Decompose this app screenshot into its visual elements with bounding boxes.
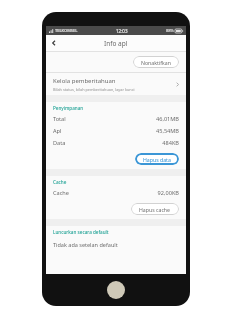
staticText: 12:03 — [116, 28, 128, 34]
staticText: 88% — [166, 28, 174, 33]
button[interactable]: Hapus data — [135, 153, 179, 165]
staticText: Cache — [53, 189, 69, 197]
staticText: Hapus data — [143, 156, 171, 163]
button[interactable]: Cache — [46, 187, 186, 199]
staticText: Kelola pemberitahuan — [53, 77, 116, 85]
staticText: Info apl — [104, 39, 128, 48]
staticText: Luncurkan secara default — [53, 229, 109, 235]
button[interactable]: Hapus cache — [131, 203, 179, 215]
button[interactable]: Nonaktifkan — [133, 56, 179, 68]
staticText: Total — [53, 115, 66, 123]
staticText: Cache — [53, 179, 67, 185]
button[interactable]: Home — [107, 281, 125, 299]
button[interactable]: Apl — [46, 125, 186, 137]
staticText: Data — [53, 139, 66, 147]
staticText: Apl — [53, 127, 62, 135]
button[interactable]: Data — [46, 137, 186, 149]
staticText: Bilah status, bilah pemberitahuan, layar… — [53, 87, 135, 92]
staticText: TELKOMSEL — [55, 28, 78, 33]
staticText: Nonaktifkan — [141, 59, 171, 66]
staticText: 92,00KB — [157, 189, 179, 197]
button[interactable]: Total — [46, 113, 186, 125]
staticText: Penyimpanan — [53, 105, 84, 111]
button[interactable]: Kelola pemberitahuan — [46, 73, 186, 95]
staticText: 484KB — [162, 139, 179, 147]
staticText: Hapus cache — [139, 206, 171, 213]
staticText: Tidak ada setelan default — [53, 241, 118, 248]
button[interactable]: Tidak ada setelan default — [46, 237, 186, 251]
button[interactable]: Back — [46, 35, 62, 51]
staticText: 46,01MB — [155, 115, 179, 123]
staticText: 45,54MB — [155, 127, 179, 135]
